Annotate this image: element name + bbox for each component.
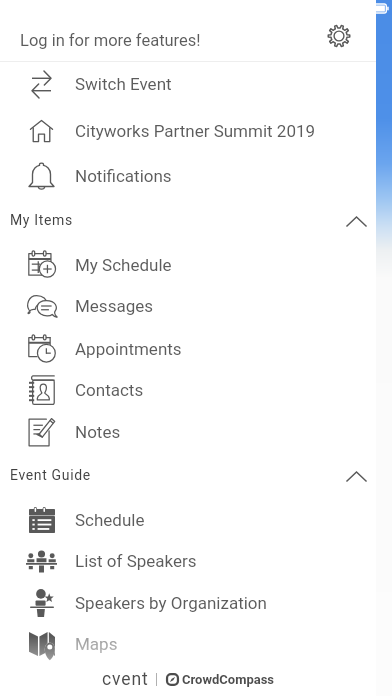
button[interactable]: Maps [0, 623, 376, 665]
button[interactable]: List of Speakers [0, 540, 376, 582]
button[interactable]: Notes [0, 411, 376, 453]
button[interactable]: Appointments [0, 328, 376, 370]
staticText: Schedule [75, 510, 145, 530]
button[interactable]: Speakers by Organization [0, 582, 376, 624]
staticText: Notes [75, 422, 121, 442]
button[interactable]: Cityworks Partner Summit 2019 [0, 110, 376, 152]
button[interactable]: Messages [0, 285, 376, 327]
staticText: Cityworks Partner Summit 2019 [75, 121, 316, 141]
button[interactable]: Notifications [0, 155, 376, 197]
staticText: Log in for more features! [20, 31, 201, 50]
button[interactable]: Event Guide [0, 454, 376, 496]
staticText: Switch Event [75, 74, 172, 94]
staticText: List of Speakers [75, 551, 197, 571]
staticText: Messages [75, 296, 153, 316]
staticText: Event Guide [10, 467, 91, 483]
staticText: Contacts [75, 380, 144, 400]
button[interactable]: Settings [315, 13, 363, 59]
button[interactable]: Log in for more features! [0, 0, 376, 61]
staticText: Maps [75, 634, 118, 654]
staticText: My Items [10, 212, 73, 228]
button[interactable]: My Schedule [0, 244, 376, 286]
staticText: Notifications [75, 166, 172, 186]
staticText: My Schedule [75, 255, 172, 275]
button[interactable]: Schedule [0, 499, 376, 541]
button[interactable]: Switch Event [0, 63, 376, 105]
staticText: Speakers by Organization [75, 593, 267, 613]
button[interactable]: My Items [0, 199, 376, 241]
staticText: CrowdCompass [182, 672, 275, 687]
staticText: Appointments [75, 339, 182, 359]
staticText: cvent [102, 669, 149, 689]
button[interactable]: Contacts [0, 369, 376, 411]
